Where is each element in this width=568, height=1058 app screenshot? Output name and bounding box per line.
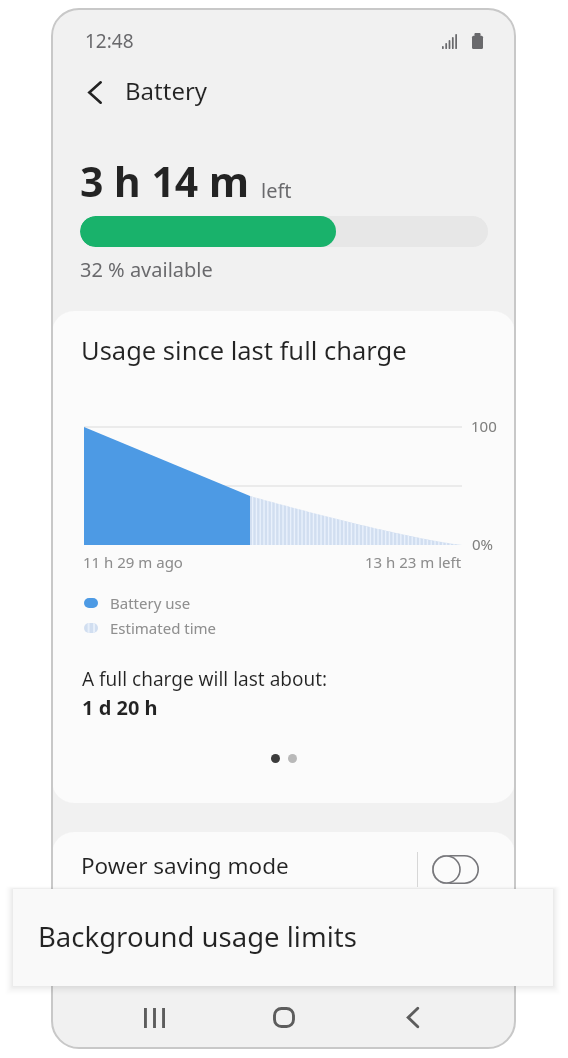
staticText: Battery use	[110, 593, 191, 613]
staticText: 100	[471, 416, 497, 436]
button[interactable]: Back	[71, 68, 119, 116]
staticText: 32 % available	[80, 256, 213, 283]
staticText: Usage since last full charge	[81, 333, 407, 368]
button[interactable]: Power saving mode toggle	[432, 855, 479, 884]
staticText: 12:48	[85, 28, 134, 54]
staticText: 0%	[472, 534, 494, 554]
staticText: 3 h 14 m	[80, 153, 249, 209]
staticText: A full charge will last about:	[82, 666, 328, 692]
staticText: Battery	[125, 74, 208, 107]
staticText: Estimated time	[110, 618, 217, 638]
button[interactable]: Home	[250, 987, 318, 1048]
button[interactable]: Recents	[120, 987, 188, 1048]
staticText: Background usage limits	[38, 918, 357, 955]
staticText: 1 d 20 h	[82, 694, 158, 721]
staticText: 11 h 29 m ago	[83, 552, 183, 572]
staticText: left	[261, 177, 292, 204]
button[interactable]: Back	[379, 987, 447, 1048]
button[interactable]: Power saving mode	[52, 832, 515, 952]
staticText: Power saving mode	[81, 850, 289, 881]
button[interactable]: Background usage limits	[13, 889, 553, 986]
staticText: 13 h 23 m left	[365, 552, 462, 572]
